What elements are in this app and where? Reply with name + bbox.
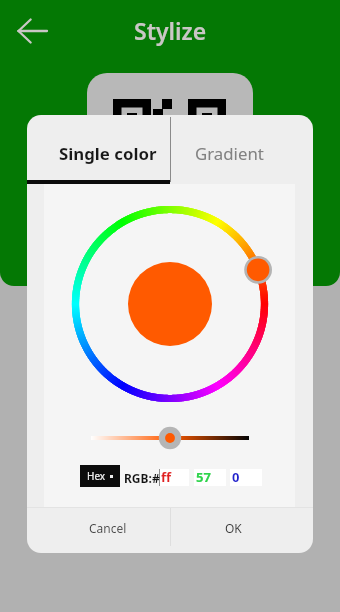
button[interactable] — [91, 436, 249, 440]
staticText: RGB: — [124, 470, 152, 486]
button[interactable]: Cancel — [27, 508, 170, 546]
button[interactable]: Single color — [27, 115, 170, 184]
staticText: 0 — [232, 468, 240, 485]
button[interactable]: Back — [0, 0, 64, 62]
staticText: Cancel — [89, 520, 127, 536]
staticText: OK — [225, 520, 242, 536]
button[interactable]: OK — [170, 508, 313, 546]
staticText: Single color — [59, 142, 157, 165]
staticText: # — [152, 470, 160, 486]
button[interactable]: ff — [159, 469, 189, 486]
staticText: 57 — [196, 468, 211, 485]
staticText: Gradient — [195, 142, 264, 165]
staticText: ff — [161, 468, 172, 485]
staticText: Hex — [87, 469, 106, 483]
button[interactable]: 57 — [194, 469, 226, 486]
button[interactable]: Gradient — [170, 115, 313, 184]
button[interactable]: Hex — [80, 465, 120, 487]
staticText: Stylize — [134, 15, 207, 46]
button[interactable]: 0 — [230, 469, 262, 486]
